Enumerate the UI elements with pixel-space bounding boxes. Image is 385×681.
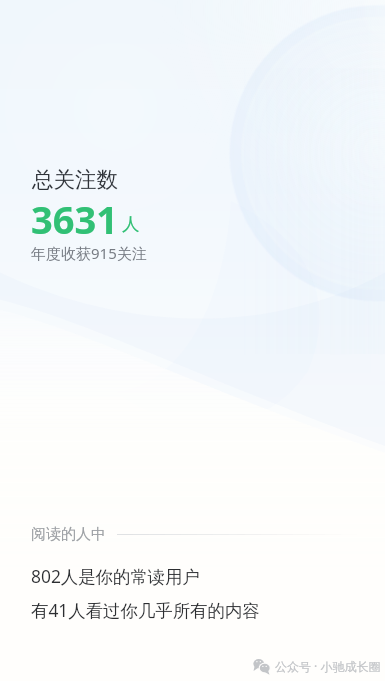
staticText: 总关注数	[32, 166, 118, 193]
staticText: 3631	[31, 193, 118, 245]
staticText: 公众号 · 小驰成长圈	[275, 658, 381, 674]
staticText: 人	[122, 213, 140, 235]
staticText: 802人是你的常读用户	[31, 564, 200, 588]
staticText: 阅读的人中	[31, 525, 106, 544]
button[interactable]: WeChat	[253, 657, 381, 674]
staticText: 有41人看过你几乎所有的内容	[31, 598, 260, 622]
other: WeChat	[253, 657, 270, 674]
staticText: 年度收获915关注	[31, 243, 147, 263]
